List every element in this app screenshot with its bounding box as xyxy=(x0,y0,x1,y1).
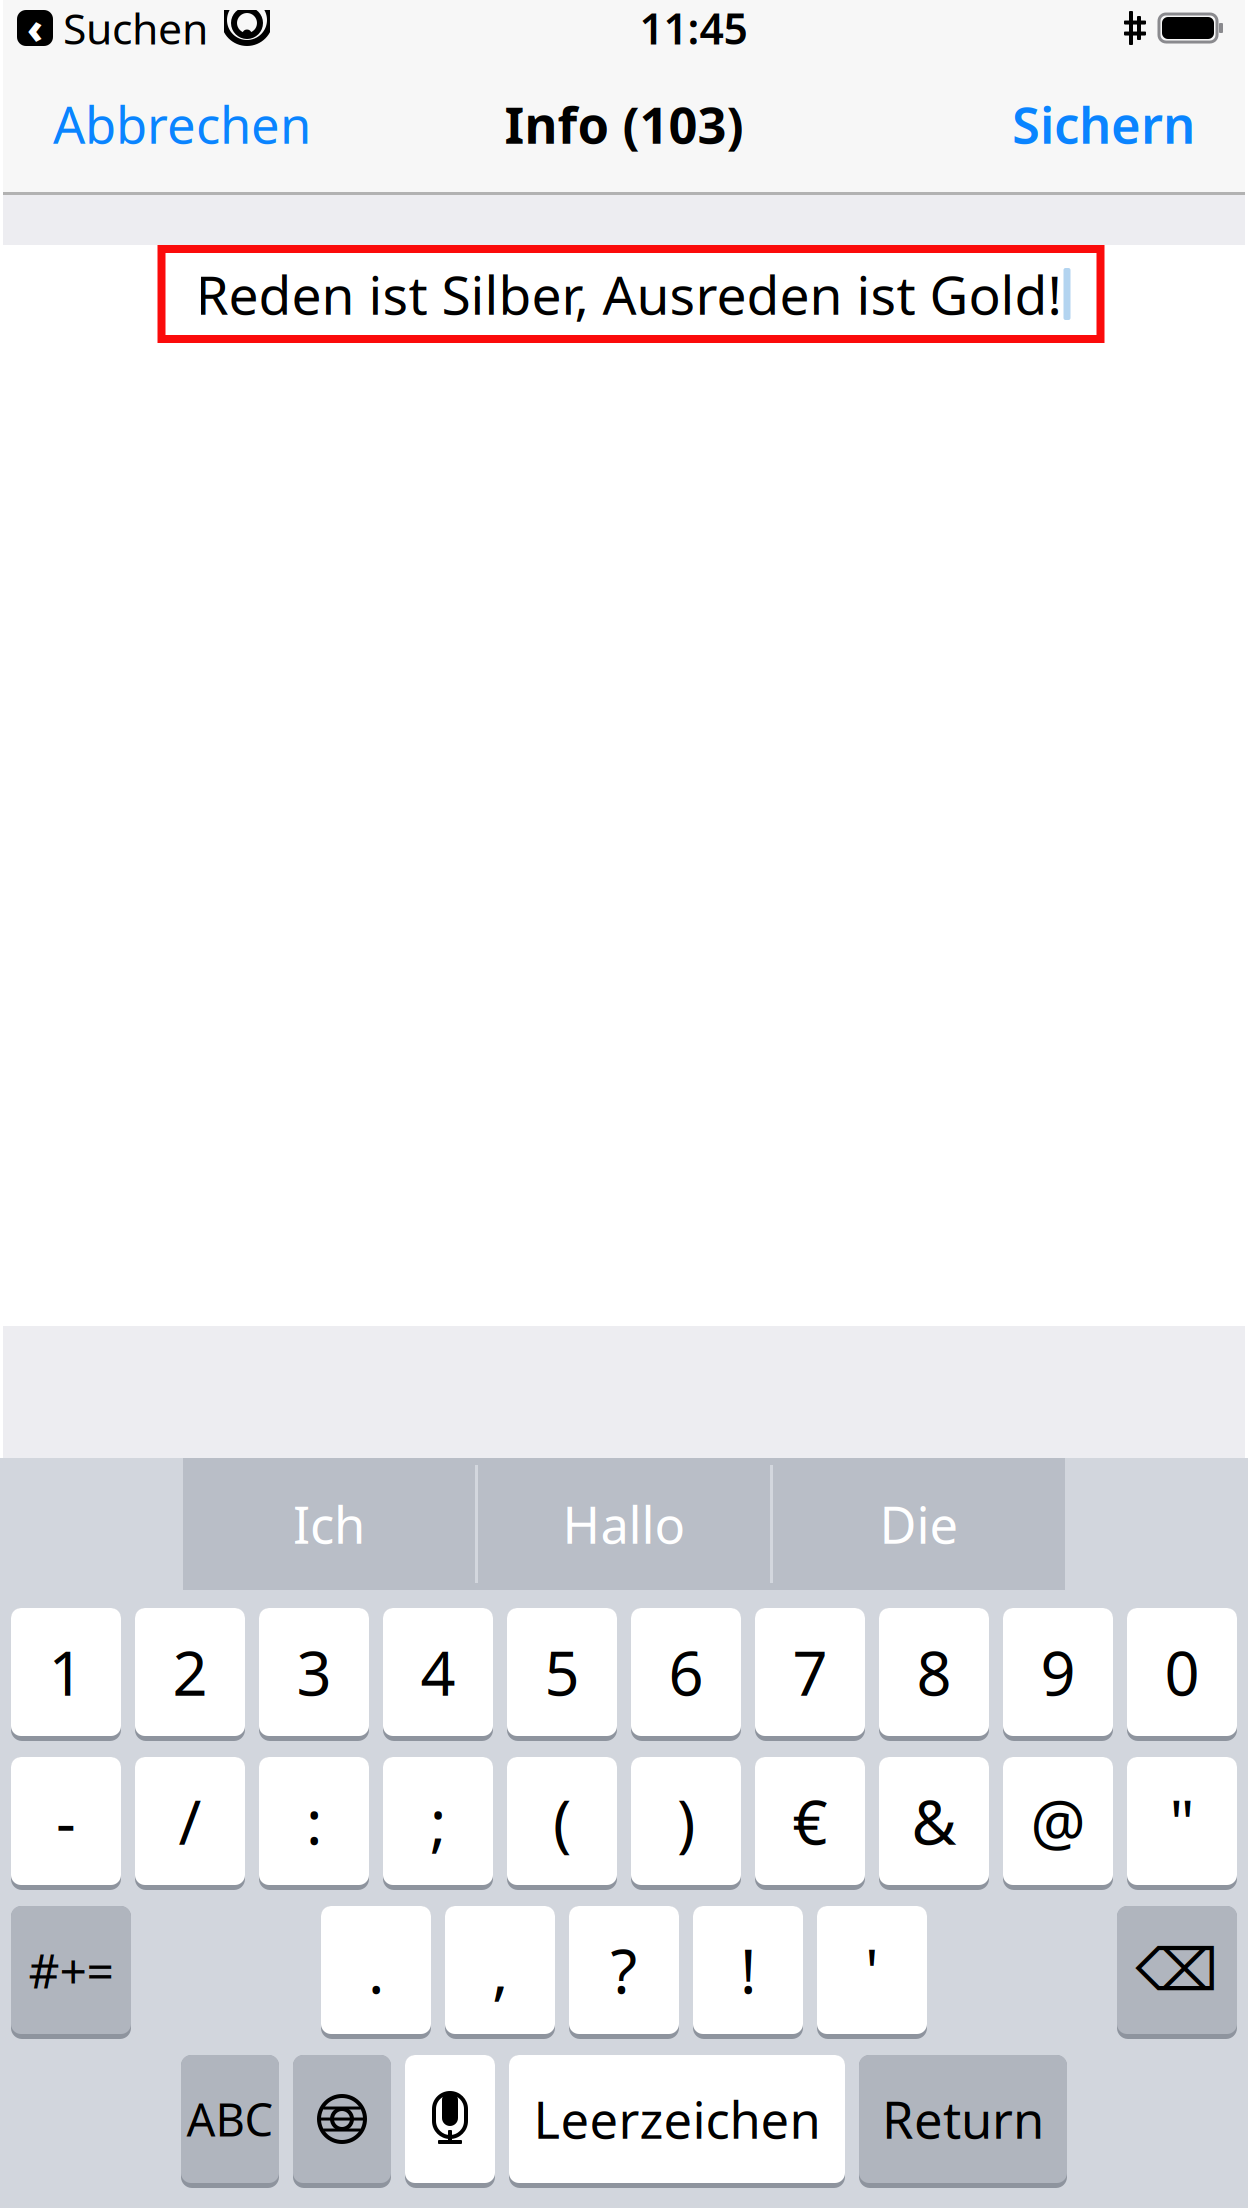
button[interactable]: Ich xyxy=(183,1458,475,1590)
staticText: #+= xyxy=(28,1938,113,2002)
button[interactable]: 9 xyxy=(1003,1608,1113,1741)
button[interactable]: ! xyxy=(693,1906,803,2039)
button[interactable]: . xyxy=(321,1906,431,2039)
button[interactable]: ' xyxy=(817,1906,927,2039)
staticText: 2 xyxy=(172,1631,207,1713)
staticText: : xyxy=(306,1780,322,1862)
staticText: Abbrechen xyxy=(53,90,311,158)
staticText: 11:45 xyxy=(639,0,747,56)
staticText: 8 xyxy=(916,1631,951,1713)
button[interactable]: 5 xyxy=(507,1608,617,1741)
button[interactable]: 4 xyxy=(383,1608,493,1741)
staticText: ( xyxy=(553,1780,571,1862)
staticText: ⌫ xyxy=(1135,1937,1218,2003)
button[interactable]: / xyxy=(135,1757,245,1890)
button[interactable]: & xyxy=(879,1757,989,1890)
button[interactable]: Next keyboard xyxy=(293,2055,391,2188)
button[interactable]: Delete xyxy=(1117,1906,1237,2039)
button[interactable]: Abbrechen xyxy=(39,78,325,170)
button[interactable]: : xyxy=(259,1757,369,1890)
button[interactable]: 2 xyxy=(135,1608,245,1741)
staticText: Sichern xyxy=(1012,90,1195,158)
button[interactable]: Leerzeichen xyxy=(509,2055,845,2188)
button[interactable]: @ xyxy=(1003,1757,1113,1890)
staticText: " xyxy=(1169,1780,1194,1862)
button[interactable]: ; xyxy=(383,1757,493,1890)
staticText: 3 xyxy=(296,1631,331,1713)
button[interactable]: 7 xyxy=(755,1608,865,1741)
staticText: € xyxy=(792,1780,827,1862)
staticText: / xyxy=(178,1780,201,1862)
button[interactable]: ( xyxy=(507,1757,617,1890)
staticText: ' xyxy=(865,1929,879,2011)
staticText: ! xyxy=(740,1929,756,2011)
staticText: ABC xyxy=(186,2089,273,2149)
staticText: Info (103) xyxy=(504,90,743,158)
staticText: ) xyxy=(677,1780,695,1862)
staticText: Leerzeichen xyxy=(533,2085,820,2153)
staticText: Suchen xyxy=(63,0,208,56)
button[interactable]: 0 xyxy=(1127,1608,1237,1741)
staticText: 1 xyxy=(48,1631,83,1713)
staticText: Ich xyxy=(293,1490,365,1558)
button[interactable]: #+= xyxy=(11,1906,131,2039)
staticText: Hallo xyxy=(562,1490,685,1558)
button[interactable]: Die xyxy=(773,1458,1065,1590)
staticText: - xyxy=(56,1780,76,1862)
staticText: 9 xyxy=(1040,1631,1075,1713)
staticText: ? xyxy=(610,1929,637,2011)
button[interactable]: ) xyxy=(631,1757,741,1890)
button[interactable]: 1 xyxy=(11,1608,121,1741)
button[interactable]: " xyxy=(1127,1757,1237,1890)
staticText: . xyxy=(368,1929,384,2011)
staticText: 7 xyxy=(792,1631,827,1713)
button[interactable]: ? xyxy=(569,1906,679,2039)
button[interactable]: Return xyxy=(859,2055,1067,2188)
staticText: ; xyxy=(430,1780,446,1862)
button[interactable]: ABC xyxy=(181,2055,279,2188)
staticText: Die xyxy=(879,1490,958,1558)
staticText: 6 xyxy=(668,1631,703,1713)
button[interactable]: 3 xyxy=(259,1608,369,1741)
button[interactable]: - xyxy=(11,1757,121,1890)
staticText: Return xyxy=(882,2085,1044,2153)
staticText: , xyxy=(492,1929,508,2011)
button[interactable]: 8 xyxy=(879,1608,989,1741)
button[interactable]: € xyxy=(755,1757,865,1890)
staticText: 0 xyxy=(1164,1631,1199,1713)
staticText: 4 xyxy=(420,1631,455,1713)
staticText: @ xyxy=(1030,1780,1085,1862)
staticText: Reden ist Silber, Ausreden ist Gold! xyxy=(195,259,1061,329)
button[interactable]: 6 xyxy=(631,1608,741,1741)
button[interactable]: Hallo xyxy=(478,1458,770,1590)
button[interactable]: , xyxy=(445,1906,555,2039)
button[interactable]: Sichern xyxy=(998,78,1209,170)
staticText: ‹ xyxy=(27,1,43,54)
button[interactable]: Dictate xyxy=(405,2055,495,2188)
staticText: & xyxy=(911,1780,956,1862)
staticText: 5 xyxy=(544,1631,579,1713)
